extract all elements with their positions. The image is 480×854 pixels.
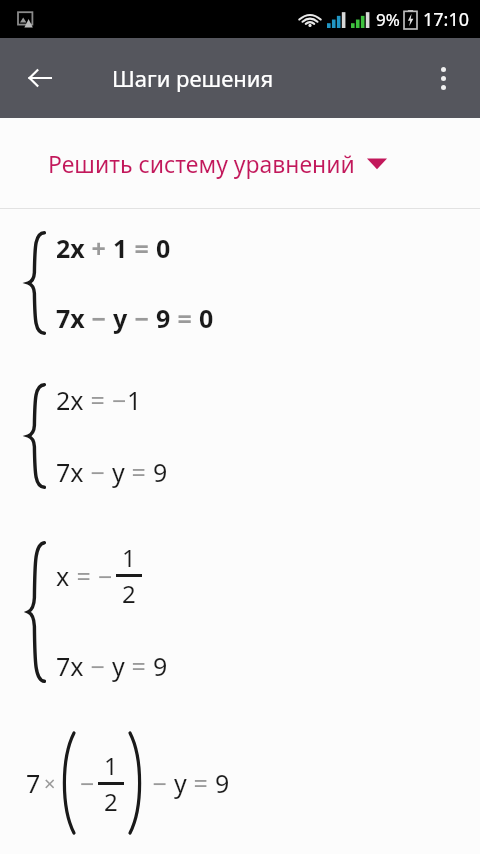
staticText: Шаги решения xyxy=(112,63,274,93)
staticText: = xyxy=(125,455,153,489)
staticText: 17:10 xyxy=(423,7,470,32)
staticText: × xyxy=(44,770,56,797)
staticText: − xyxy=(80,766,95,800)
staticText: 1 xyxy=(127,383,142,417)
staticText: 9 xyxy=(153,649,168,683)
staticText: 2x xyxy=(56,231,85,265)
staticText: − xyxy=(84,455,112,489)
staticText: 9% xyxy=(376,8,400,31)
staticText: y xyxy=(174,766,187,800)
staticText: 2 xyxy=(122,577,136,610)
staticText: 1 xyxy=(122,541,136,574)
staticText: 0 xyxy=(156,231,171,265)
staticText: = xyxy=(187,766,215,800)
staticText: Решить систему уравнений xyxy=(48,148,355,179)
staticText: = xyxy=(171,301,199,335)
staticText: 7x xyxy=(56,301,85,335)
staticText: + xyxy=(85,231,113,265)
staticText: 9 xyxy=(156,301,171,335)
staticText: − xyxy=(84,649,112,683)
staticText: 1 xyxy=(104,749,118,782)
staticText: = xyxy=(128,231,156,265)
staticText: 7 xyxy=(26,766,41,800)
staticText: 2x xyxy=(56,383,84,417)
staticText: 0 xyxy=(199,301,214,335)
button[interactable]: Решить систему уравнений xyxy=(0,118,480,208)
staticText: = xyxy=(70,559,98,593)
staticText: − xyxy=(128,301,156,335)
staticText: 2 xyxy=(104,785,118,818)
staticText: 9 xyxy=(215,766,230,800)
staticText: = xyxy=(84,383,112,417)
staticText: − xyxy=(112,383,127,417)
staticText: y xyxy=(112,455,125,489)
staticText: 1 xyxy=(113,231,128,265)
staticText: − xyxy=(146,766,174,800)
staticText: y xyxy=(112,649,125,683)
staticText: 9 xyxy=(153,455,168,489)
staticText: = xyxy=(125,649,153,683)
staticText: x xyxy=(56,559,70,593)
staticText: y xyxy=(113,301,128,335)
button[interactable]: More options xyxy=(415,50,471,106)
staticText: 7x xyxy=(56,455,84,489)
staticText: − xyxy=(85,301,113,335)
staticText: − xyxy=(98,559,113,593)
staticText: 7x xyxy=(56,649,84,683)
button[interactable]: Back xyxy=(10,48,70,108)
